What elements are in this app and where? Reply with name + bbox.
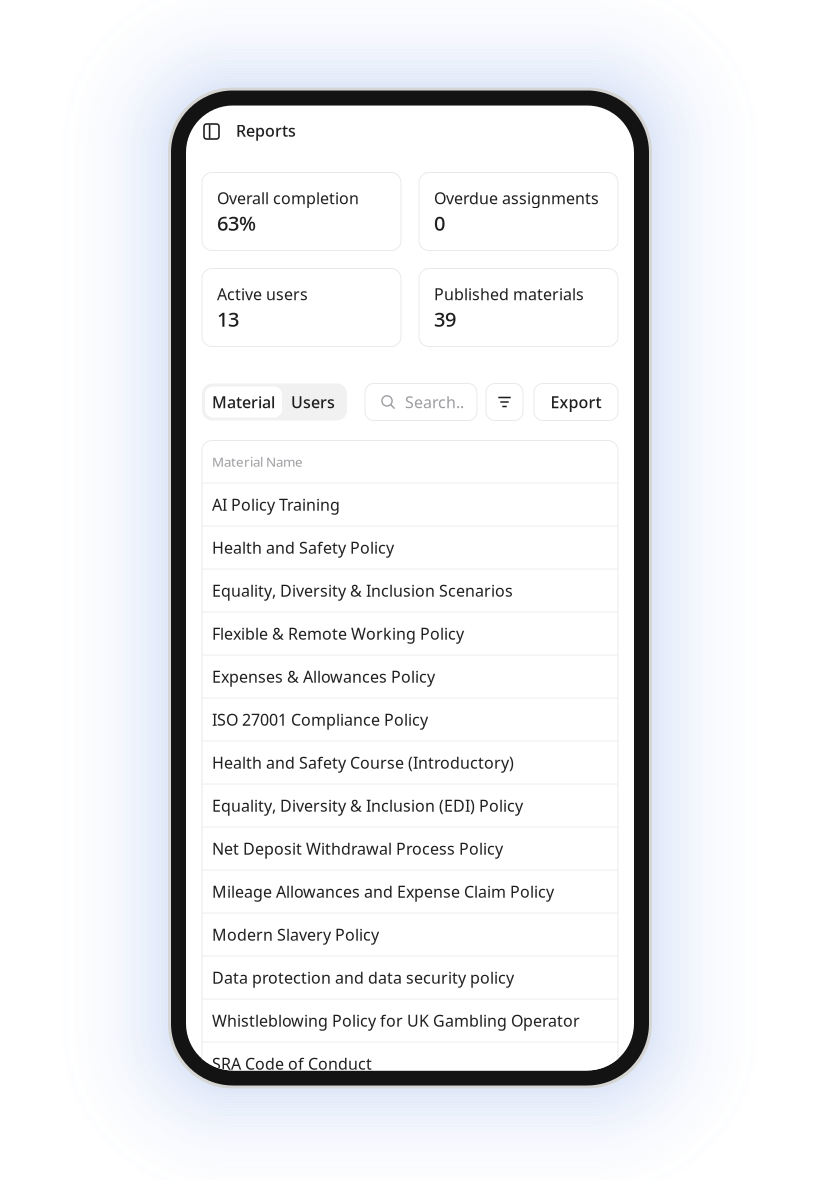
button[interactable]: Anti-Bribery and Corruption Policy [202,1085,618,1127]
button[interactable]: Reports [186,105,634,155]
button[interactable]: Modern Slavery Policy [202,913,618,955]
button[interactable]: Active users [202,268,401,346]
staticText: Expenses & Allowances Policy [212,666,435,687]
button[interactable]: Export [534,383,618,420]
staticText: AI Policy Training [212,494,340,515]
staticText: Search.. [405,391,464,413]
button[interactable]: Search.. [365,383,477,420]
button[interactable]: Overdue assignments [419,172,618,250]
staticText: Equality, Diversity & Inclusion Scenario… [212,580,513,601]
staticText: Modern Slavery Policy [212,924,379,945]
staticText: ISO 27001 Compliance Policy [212,709,428,730]
button[interactable]: Material [205,386,282,417]
button[interactable]: Mileage Allowances and Expense Claim Pol… [202,870,618,912]
staticText: 39 [434,306,456,332]
button[interactable]: ISO 27001 Compliance Policy [202,698,618,740]
staticText: Overall completion [217,187,359,209]
staticText: Net Deposit Withdrawal Process Policy [212,838,503,859]
staticText: Health and Safety Policy [212,537,394,558]
staticText: SRA Code of Conduct [212,1053,372,1074]
button[interactable]: AI Policy Training [202,483,618,525]
staticText: Export [550,391,601,413]
button[interactable]: Filter [486,383,523,420]
staticText: Flexible & Remote Working Policy [212,623,464,644]
staticText: Users [291,391,335,413]
button[interactable]: Data protection and data security policy [202,956,618,998]
button[interactable]: Overall completion [202,172,401,250]
button[interactable]: Flexible & Remote Working Policy [202,612,618,654]
staticText: Reports [236,120,296,141]
staticText: Mileage Allowances and Expense Claim Pol… [212,881,554,902]
button[interactable]: Equality, Diversity & Inclusion Scenario… [202,569,618,611]
staticText: Material Name [212,453,303,470]
button[interactable]: Whistleblowing Policy for UK Gambling Op… [202,999,618,1041]
staticText: Published materials [434,283,584,305]
button[interactable]: Equality, Diversity & Inclusion (EDI) Po… [202,784,618,826]
staticText: 63% [217,210,256,236]
staticText: 0 [434,210,445,236]
button[interactable]: Published materials [419,268,618,346]
staticText: Overdue assignments [434,187,599,209]
staticText: Material [212,391,275,413]
button[interactable]: Health and Safety Policy [202,526,618,568]
staticText: Data protection and data security policy [212,967,514,988]
button[interactable]: Expenses & Allowances Policy [202,655,618,697]
button[interactable]: Health and Safety Course (Introductory) [202,741,618,783]
staticText: Active users [217,283,308,305]
staticText: 13 [217,306,239,332]
button[interactable]: SRA Code of Conduct [202,1042,618,1084]
button[interactable]: Net Deposit Withdrawal Process Policy [202,827,618,869]
staticText: Health and Safety Course (Introductory) [212,752,514,773]
button[interactable]: Users [282,386,344,417]
staticText: Whistleblowing Policy for UK Gambling Op… [212,1010,580,1031]
staticText: Equality, Diversity & Inclusion (EDI) Po… [212,795,523,816]
